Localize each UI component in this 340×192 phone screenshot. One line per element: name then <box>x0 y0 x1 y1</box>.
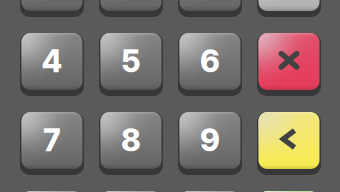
button[interactable]: 4 <box>20 33 84 96</box>
button[interactable]: 8 <box>99 112 163 175</box>
button[interactable]: 0 <box>99 191 163 192</box>
button[interactable]: 7 <box>20 112 84 175</box>
staticText: 4 <box>41 42 62 79</box>
staticText: 9 <box>200 121 220 158</box>
staticText: 7 <box>43 121 61 158</box>
button[interactable]: Enter <box>257 191 321 192</box>
button[interactable]: 3 <box>178 0 242 17</box>
button[interactable]: 1 <box>20 0 84 17</box>
button[interactable]: 2 <box>99 0 163 17</box>
staticText: 8 <box>121 121 141 158</box>
button[interactable]: 5 <box>99 33 163 96</box>
staticText: 5 <box>121 42 140 79</box>
staticText: 6 <box>200 42 220 79</box>
button[interactable]: Decimal point <box>20 191 84 192</box>
button[interactable]: Delete <box>257 112 321 175</box>
button[interactable]: Clear <box>257 33 321 96</box>
button[interactable]: 9 <box>178 112 242 175</box>
button[interactable]: 6 <box>178 33 242 96</box>
button[interactable]: Function <box>257 0 321 17</box>
button[interactable]: Double zero <box>178 191 242 192</box>
